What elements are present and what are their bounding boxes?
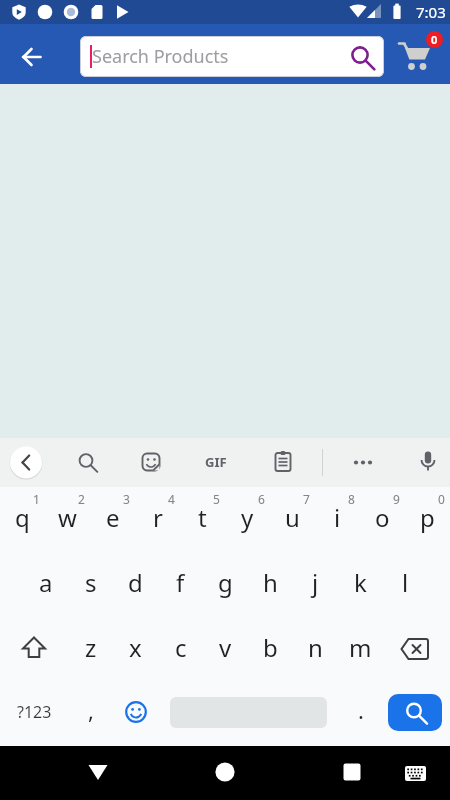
staticText: b bbox=[263, 631, 278, 664]
button[interactable]: b bbox=[248, 617, 293, 682]
staticText: x bbox=[129, 631, 142, 664]
staticText: o bbox=[375, 501, 390, 534]
button[interactable] bbox=[332, 752, 372, 792]
staticText: v bbox=[219, 631, 232, 664]
staticText: r bbox=[153, 501, 163, 534]
staticText: f bbox=[176, 566, 185, 599]
button[interactable] bbox=[78, 752, 118, 792]
staticText: g bbox=[218, 566, 233, 599]
button[interactable]: m bbox=[338, 617, 383, 682]
staticText: z bbox=[85, 631, 97, 664]
staticText: p bbox=[420, 501, 435, 534]
staticText: 6 bbox=[258, 491, 265, 507]
staticText: 7:03 bbox=[416, 2, 446, 22]
staticText: s bbox=[85, 566, 97, 599]
staticText: k bbox=[354, 566, 367, 599]
staticText: 2 bbox=[78, 491, 85, 507]
staticText: l bbox=[402, 566, 409, 599]
button[interactable] bbox=[131, 442, 171, 482]
button[interactable] bbox=[7, 33, 55, 81]
staticText: e bbox=[106, 501, 120, 534]
staticText: i bbox=[334, 501, 341, 534]
button[interactable]: c bbox=[158, 617, 203, 682]
button[interactable]: z bbox=[68, 617, 113, 682]
button[interactable] bbox=[263, 442, 303, 482]
button[interactable]: e bbox=[90, 487, 135, 552]
staticText: . bbox=[358, 695, 364, 725]
button[interactable] bbox=[383, 617, 450, 682]
button[interactable] bbox=[343, 442, 383, 482]
button[interactable] bbox=[408, 442, 448, 482]
staticText: m bbox=[349, 631, 372, 664]
staticText: 5 bbox=[213, 491, 220, 507]
button[interactable]: d bbox=[113, 552, 158, 617]
button[interactable]: r bbox=[135, 487, 180, 552]
staticText: j bbox=[312, 566, 319, 599]
button[interactable] bbox=[113, 682, 158, 746]
button[interactable]: GIF bbox=[196, 442, 236, 482]
button[interactable] bbox=[158, 682, 338, 746]
button[interactable]: l bbox=[383, 552, 428, 617]
staticText: h bbox=[263, 566, 278, 599]
button[interactable]: Search Products bbox=[80, 36, 384, 77]
button[interactable] bbox=[0, 617, 68, 682]
button[interactable]: , bbox=[68, 682, 113, 746]
button[interactable]: i bbox=[315, 487, 360, 552]
button[interactable]: . bbox=[338, 682, 383, 746]
staticText: 0 bbox=[431, 32, 438, 47]
button[interactable]: f bbox=[158, 552, 203, 617]
button[interactable]: g bbox=[203, 552, 248, 617]
button[interactable]: j bbox=[293, 552, 338, 617]
staticText: 8 bbox=[348, 491, 355, 507]
staticText: 4 bbox=[168, 491, 175, 507]
staticText: y bbox=[241, 501, 254, 534]
button[interactable]: 0 bbox=[392, 33, 442, 83]
staticText: d bbox=[128, 566, 143, 599]
staticText: ?123 bbox=[17, 701, 52, 723]
staticText: 1 bbox=[33, 491, 40, 507]
button[interactable]: n bbox=[293, 617, 338, 682]
button[interactable] bbox=[395, 752, 435, 792]
button[interactable] bbox=[6, 442, 46, 482]
button[interactable]: p bbox=[405, 487, 450, 552]
staticText: c bbox=[175, 631, 187, 664]
button[interactable]: q bbox=[0, 487, 45, 552]
button[interactable]: h bbox=[248, 552, 293, 617]
button[interactable]: u bbox=[270, 487, 315, 552]
button[interactable]: y bbox=[225, 487, 270, 552]
staticText: w bbox=[58, 501, 77, 534]
button[interactable]: v bbox=[203, 617, 248, 682]
button[interactable]: ?123 bbox=[0, 682, 68, 746]
staticText: 0 bbox=[438, 491, 445, 507]
staticText: 3 bbox=[123, 491, 130, 507]
staticText: a bbox=[39, 566, 53, 599]
staticText: , bbox=[88, 695, 94, 725]
button[interactable]: w bbox=[45, 487, 90, 552]
button[interactable] bbox=[205, 752, 245, 792]
staticText: n bbox=[308, 631, 323, 664]
button[interactable]: s bbox=[68, 552, 113, 617]
button[interactable]: k bbox=[338, 552, 383, 617]
staticText: GIF bbox=[205, 453, 227, 471]
button[interactable] bbox=[67, 442, 107, 482]
button[interactable]: x bbox=[113, 617, 158, 682]
staticText: q bbox=[15, 501, 30, 534]
staticText: t bbox=[198, 501, 207, 534]
staticText: 7 bbox=[303, 491, 310, 507]
button[interactable]: a bbox=[23, 552, 68, 617]
button[interactable]: o bbox=[360, 487, 405, 552]
staticText: 9 bbox=[393, 491, 400, 507]
staticText: u bbox=[285, 501, 300, 534]
staticText: Search Products bbox=[92, 44, 229, 69]
button[interactable] bbox=[383, 682, 450, 746]
button[interactable]: t bbox=[180, 487, 225, 552]
